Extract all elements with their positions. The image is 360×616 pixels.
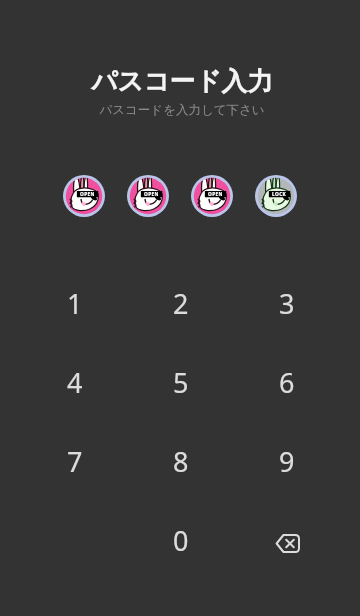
staticText: 7 — [67, 443, 83, 480]
staticText: 1 — [67, 285, 83, 322]
staticText: 5 — [173, 364, 189, 401]
staticText: 2 — [173, 285, 189, 322]
button[interactable]: 9 — [234, 422, 340, 501]
button[interactable]: 4 — [22, 343, 128, 422]
button[interactable]: 7 — [22, 422, 128, 501]
staticText: 3 — [279, 285, 295, 322]
staticText: 8 — [173, 443, 189, 480]
staticText: パスコードを入力して下さい — [99, 102, 265, 118]
staticText: 6 — [279, 364, 295, 401]
staticText: パスコード入力 — [91, 65, 273, 97]
staticText: 9 — [279, 443, 295, 480]
staticText: 4 — [67, 364, 83, 401]
button[interactable]: 3 — [234, 264, 340, 343]
button[interactable]: 8 — [128, 422, 234, 501]
button[interactable]: 5 — [128, 343, 234, 422]
button[interactable]: 2 — [128, 264, 234, 343]
staticText: 0 — [173, 522, 189, 559]
button[interactable]: Backspace — [234, 501, 340, 580]
button[interactable]: 0 — [128, 501, 234, 580]
button[interactable]: 6 — [234, 343, 340, 422]
button[interactable]: 1 — [22, 264, 128, 343]
